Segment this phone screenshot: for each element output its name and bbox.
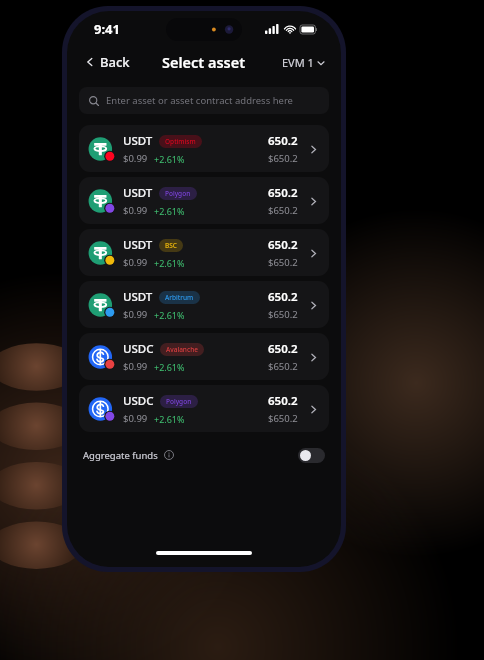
staticText: Aggregate funds — [83, 449, 158, 462]
button[interactable]: Open USDT on Optimism — [305, 141, 321, 157]
staticText: USDT — [123, 133, 153, 149]
button[interactable]: USDT — [79, 177, 329, 224]
button[interactable]: Open USDC on Avalanche — [305, 349, 321, 365]
staticText: $650.2 — [268, 360, 298, 373]
staticText: $0.99 — [123, 152, 148, 165]
staticText: USDT — [123, 289, 153, 305]
staticText: Enter asset or asset contract address he… — [106, 94, 293, 107]
button[interactable]: USDC — [79, 333, 329, 380]
staticText: +2.61% — [154, 413, 185, 425]
button[interactable]: Enter asset or asset contract address he… — [79, 87, 329, 114]
staticText: USDT — [123, 237, 153, 253]
staticText: $650.2 — [268, 152, 298, 165]
button[interactable]: Open USDT on Polygon — [305, 193, 321, 209]
staticText: 650.2 — [268, 185, 298, 201]
staticText: $0.99 — [123, 308, 148, 321]
staticText: +2.61% — [154, 257, 185, 269]
staticText: 650.2 — [268, 237, 298, 253]
staticText: USDT — [123, 185, 153, 201]
staticText: 650.2 — [268, 393, 298, 409]
button[interactable]: USDT — [79, 125, 329, 172]
staticText: Avalanche — [166, 345, 198, 354]
staticText: +2.61% — [154, 153, 185, 165]
staticText: $650.2 — [268, 256, 298, 269]
button[interactable]: Open USDT on BSC — [305, 245, 321, 261]
staticText: +2.61% — [154, 205, 185, 217]
button[interactable]: Aggregate funds — [83, 442, 325, 468]
button[interactable]: EVM 1 — [278, 51, 329, 74]
staticText: 9:41 — [94, 20, 120, 38]
staticText: BSC — [165, 241, 177, 250]
button[interactable]: USDT — [79, 229, 329, 276]
button[interactable]: Aggregate funds toggle — [298, 448, 325, 463]
staticText: +2.61% — [154, 361, 185, 373]
button[interactable]: USDT — [79, 281, 329, 328]
staticText: USDC — [123, 393, 154, 409]
button[interactable]: USDC — [79, 385, 329, 432]
staticText: EVM 1 — [282, 55, 314, 70]
staticText: USDC — [123, 341, 154, 357]
staticText: $650.2 — [268, 412, 298, 425]
staticText: Arbitrum — [165, 293, 194, 302]
staticText: +2.61% — [154, 309, 185, 321]
staticText: Select asset — [162, 52, 246, 72]
button[interactable]: Back — [79, 49, 136, 75]
staticText: 650.2 — [268, 341, 298, 357]
staticText: Polygon — [165, 189, 191, 198]
staticText: 650.2 — [268, 289, 298, 305]
staticText: Optimism — [165, 137, 196, 146]
staticText: Polygon — [166, 397, 192, 406]
staticText: $0.99 — [123, 204, 148, 217]
staticText: $0.99 — [123, 360, 148, 373]
staticText: $0.99 — [123, 256, 148, 269]
staticText: Back — [100, 53, 130, 71]
staticText: $0.99 — [123, 412, 148, 425]
staticText: $650.2 — [268, 204, 298, 217]
staticText: 650.2 — [268, 133, 298, 149]
button[interactable]: Open USDT on Arbitrum — [305, 297, 321, 313]
staticText: $650.2 — [268, 308, 298, 321]
button[interactable]: Open USDC on Polygon — [305, 401, 321, 417]
